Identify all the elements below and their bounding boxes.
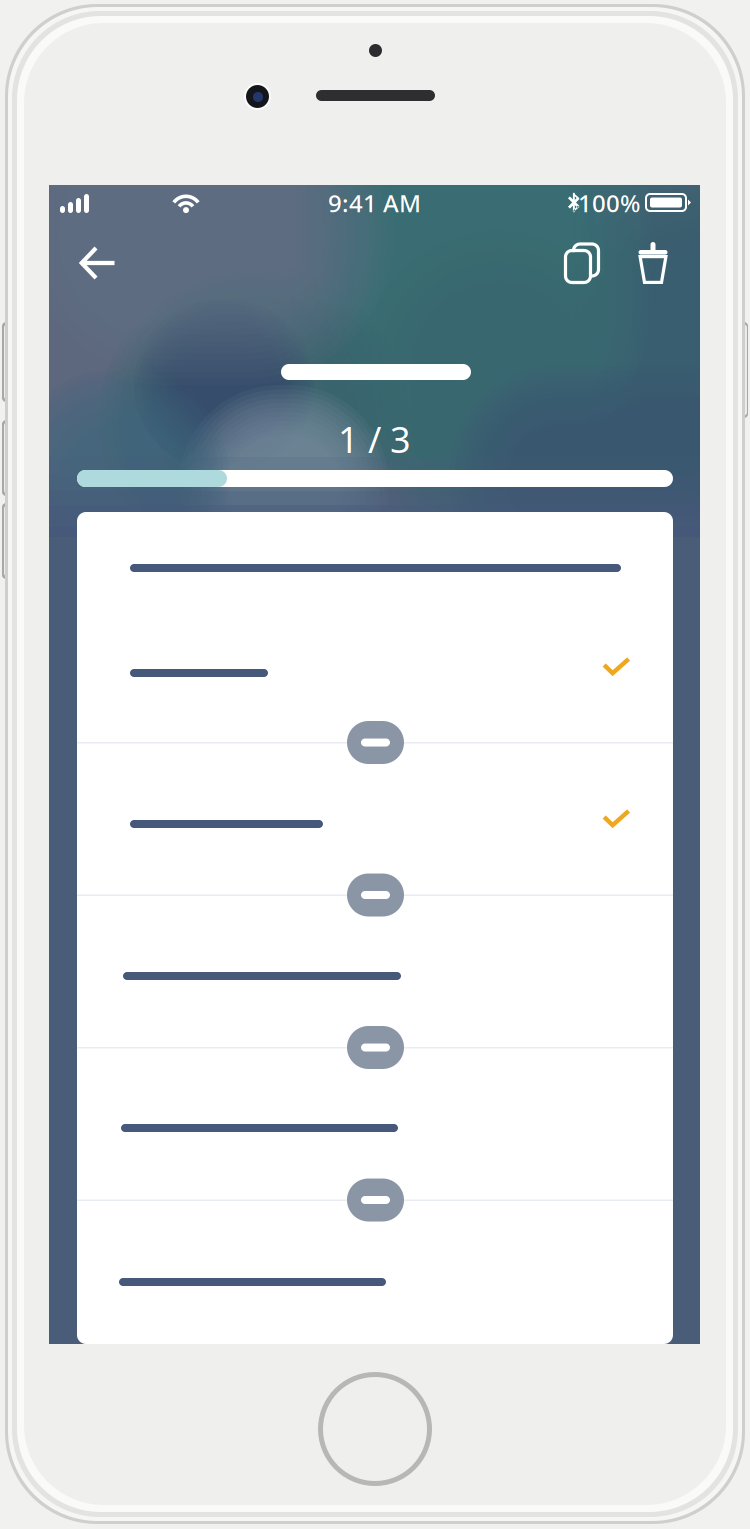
button[interactable]: Duplicate [49, 185, 115, 247]
button[interactable]: Collapse section [49, 185, 106, 228]
staticText: 1 / 3 [338, 415, 411, 463]
button[interactable]: Collapse section [49, 185, 106, 228]
button[interactable]: Collapse section [49, 185, 106, 228]
staticText: 9:41 AM [328, 187, 421, 219]
staticText: 100% [578, 187, 640, 219]
button[interactable]: Delete [49, 185, 111, 247]
button[interactable]: Back [49, 185, 121, 247]
button[interactable]: Collapse section [49, 185, 106, 228]
